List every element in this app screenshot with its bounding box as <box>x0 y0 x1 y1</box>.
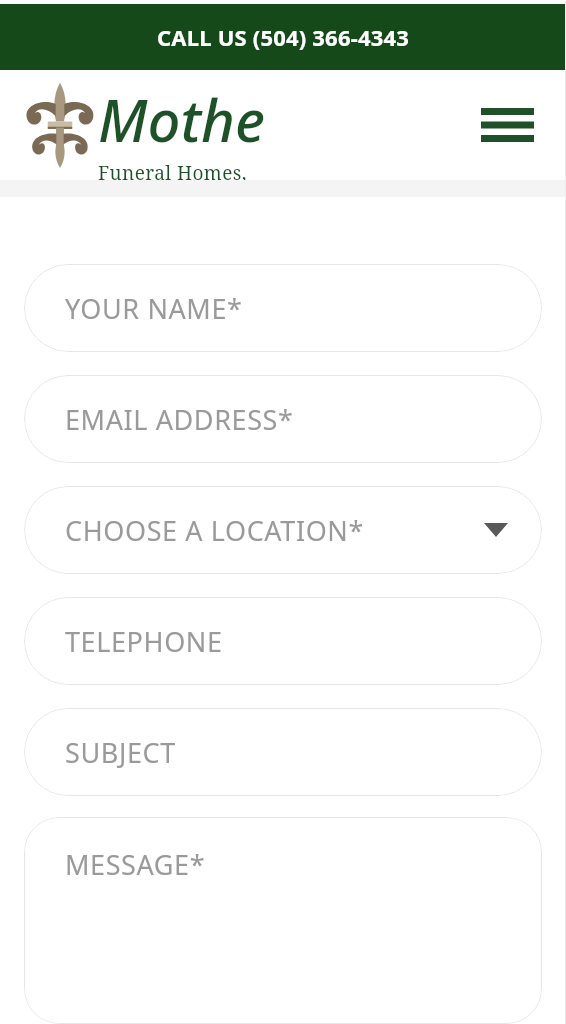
staticText: Funeral Homes, LLC <box>98 160 268 190</box>
button[interactable]: Mothe <box>98 80 268 190</box>
staticText: TELEPHONE <box>65 623 223 660</box>
staticText: EMAIL ADDRESS* <box>65 401 294 438</box>
button[interactable]: CALL US (504) 366-4343 <box>0 4 566 70</box>
button[interactable]: Open menu <box>474 97 540 153</box>
button[interactable]: CHOOSE A LOCATION* <box>24 486 542 574</box>
staticText: CALL US (504) 366-4343 <box>157 22 410 52</box>
button[interactable]: EMAIL ADDRESS* <box>24 375 542 463</box>
button[interactable]: MESSAGE* <box>24 817 542 1024</box>
button[interactable]: SUBJECT <box>24 708 542 796</box>
staticText: YOUR NAME* <box>65 290 243 327</box>
staticText: SUBJECT <box>65 734 176 771</box>
staticText: CHOOSE A LOCATION* <box>65 512 364 549</box>
staticText: MESSAGE* <box>65 846 206 883</box>
button[interactable]: YOUR NAME* <box>24 264 542 352</box>
staticText: Mothe <box>98 80 265 159</box>
button[interactable]: TELEPHONE <box>24 597 542 685</box>
